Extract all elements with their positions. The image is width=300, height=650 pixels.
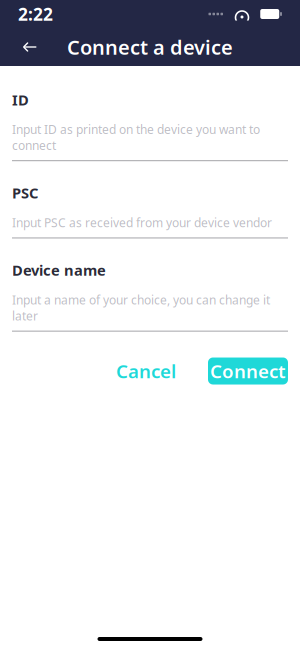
button[interactable]: Connect [208,357,288,384]
button[interactable]: Cancel [102,357,190,384]
staticText: 2:22 [18,2,53,25]
staticText: Input ID as printed on the device you wa… [12,121,260,153]
staticText: Device name [12,260,106,280]
staticText: Connect a device [67,34,233,60]
staticText: Cancel [116,359,176,383]
staticText: Input PSC as received from your device v… [12,215,272,230]
staticText: ID [12,90,29,109]
staticText: PSC [12,183,38,203]
staticText: Connect [210,359,286,383]
button[interactable]: Back [10,30,50,64]
staticText: Input a name of your choice, you can cha… [12,292,270,324]
